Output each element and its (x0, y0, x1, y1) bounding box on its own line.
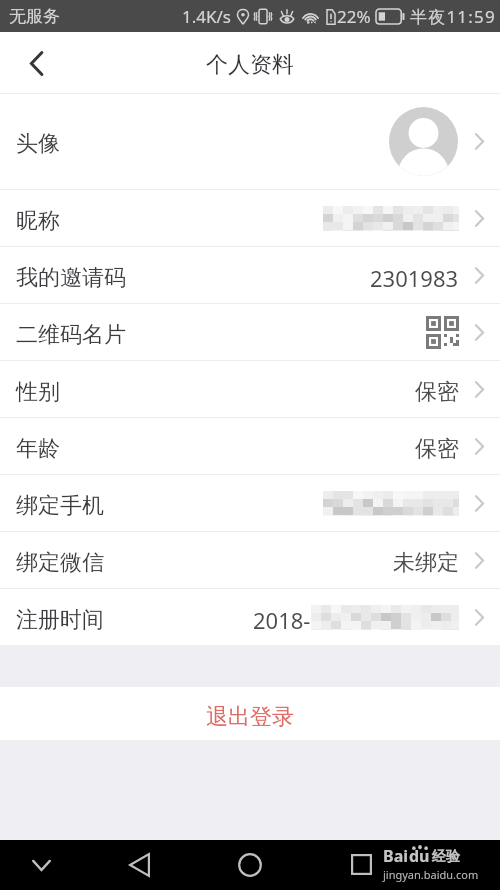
staticText: 22% (337, 5, 371, 28)
staticText: 保密 (415, 435, 459, 463)
button[interactable]: 性别 (0, 361, 500, 417)
button[interactable]: 注册时间 (0, 589, 500, 645)
button[interactable]: Recents (337, 840, 386, 889)
button[interactable]: 绑定手机 (0, 475, 500, 531)
staticText: Bai (383, 845, 409, 867)
button[interactable]: 年龄 (0, 418, 500, 474)
staticText: jingyan.baidu.com (383, 867, 479, 882)
staticText: du (409, 845, 430, 867)
button[interactable]: 我的邀请码 (0, 247, 500, 303)
staticText: 经验 (432, 848, 460, 866)
staticText: 半夜11:59 (410, 5, 496, 28)
staticText: 1.4K/s (182, 5, 231, 28)
staticText: 绑定手机 (16, 492, 104, 520)
button[interactable]: Back (10, 32, 62, 94)
button[interactable]: 头像 (0, 94, 500, 189)
staticText: 我的邀请码 (16, 264, 126, 292)
staticText: 二维码名片 (16, 321, 126, 349)
staticText: 无服务 (9, 6, 60, 27)
staticText: 个人资料 (206, 51, 294, 79)
button[interactable]: 绑定微信 (0, 532, 500, 588)
button[interactable]: Back (115, 840, 164, 889)
staticText: 退出登录 (206, 703, 294, 731)
staticText: 年龄 (16, 435, 60, 463)
staticText: 绑定微信 (16, 549, 104, 577)
staticText: 性别 (16, 378, 60, 406)
staticText: 保密 (415, 378, 459, 406)
button[interactable]: 昵称 (0, 190, 500, 246)
staticText: 昵称 (16, 207, 60, 235)
button[interactable]: Home (225, 840, 274, 889)
staticText: 2301983 (370, 263, 459, 293)
staticText: 2018- (253, 605, 311, 635)
staticText: 头像 (16, 130, 60, 158)
staticText: 未绑定 (393, 549, 459, 577)
button[interactable]: 退出登录 (0, 687, 500, 740)
button[interactable]: Hide keyboard (17, 840, 66, 889)
button[interactable]: 二维码名片 (0, 304, 500, 360)
staticText: 注册时间 (16, 606, 104, 634)
